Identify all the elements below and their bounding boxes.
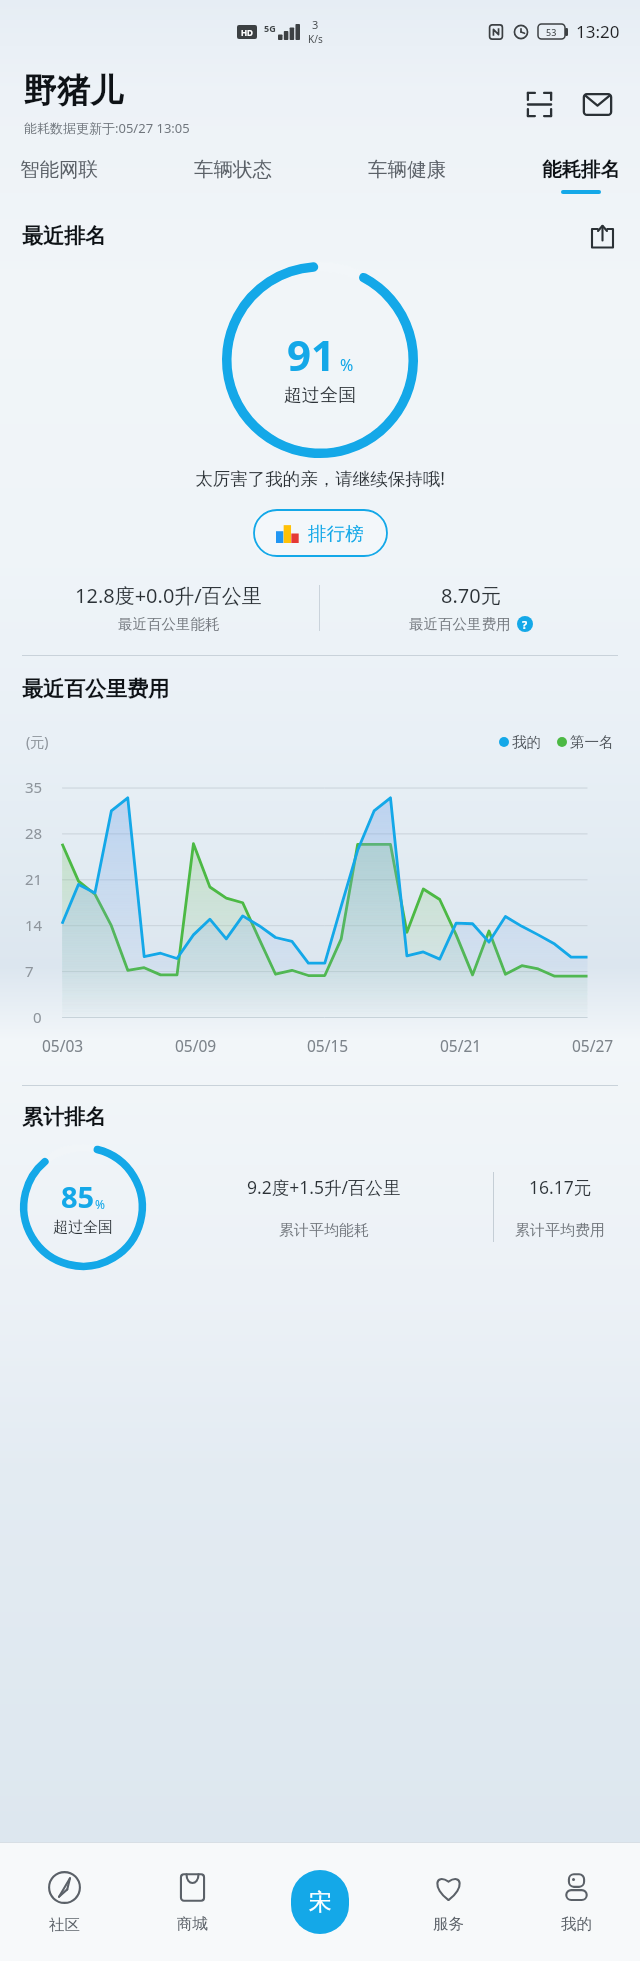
staticText: 服务: [433, 1914, 464, 1934]
staticText: 最近百公里费用: [22, 676, 169, 702]
staticText: 宋: [309, 1888, 332, 1917]
staticText: K/s: [308, 32, 323, 46]
button[interactable]: 服务: [384, 1843, 512, 1961]
staticText: 我的: [512, 733, 541, 751]
staticText: ?: [522, 617, 528, 632]
staticText: 超过全国: [284, 384, 356, 407]
staticText: 累计平均能耗: [279, 1221, 369, 1240]
staticText: 最近百公里能耗: [118, 615, 220, 633]
staticText: 超过全国: [53, 1218, 113, 1237]
button[interactable]: 能耗排名: [536, 155, 626, 196]
staticText: (元): [26, 732, 49, 751]
staticText: 能耗数据更新于:05/27 13:05: [24, 119, 190, 137]
button[interactable]: 车辆状态: [188, 155, 278, 196]
staticText: 7: [25, 961, 34, 981]
button[interactable]: 社区: [0, 1843, 128, 1961]
staticText: 05/15: [307, 1035, 349, 1056]
staticText: 第一名: [570, 733, 614, 751]
button[interactable]: 排行榜: [250, 510, 390, 556]
button[interactable]: 宋: [256, 1843, 384, 1961]
staticText: 野猪儿: [24, 70, 123, 112]
button[interactable]: 智能网联: [14, 155, 104, 196]
staticText: 53: [546, 26, 557, 38]
staticText: 社区: [49, 1915, 80, 1935]
staticText: 05/09: [175, 1035, 217, 1056]
staticText: %: [95, 1196, 105, 1212]
staticText: 05/21: [440, 1035, 482, 1056]
staticText: 能耗排名: [542, 157, 620, 182]
staticText: 35: [25, 777, 43, 797]
button[interactable]: Share: [584, 218, 620, 254]
staticText: 累计平均费用: [515, 1221, 605, 1240]
staticText: 5G: [264, 22, 276, 34]
staticText: 排行榜: [308, 522, 364, 545]
staticText: 91: [287, 326, 336, 383]
staticText: 05/03: [42, 1035, 84, 1056]
staticText: 8.70元: [441, 582, 501, 609]
staticText: 85: [61, 1177, 95, 1216]
staticText: 车辆健康: [368, 157, 446, 182]
staticText: 最近百公里费用: [409, 615, 511, 633]
staticText: 3: [312, 17, 319, 32]
staticText: 21: [25, 869, 43, 889]
staticText: 14: [25, 915, 43, 935]
staticText: 太厉害了我的亲，请继续保持哦!: [0, 466, 640, 490]
staticText: 车辆状态: [194, 157, 272, 182]
button[interactable]: Info: [517, 616, 533, 632]
staticText: 商城: [177, 1914, 208, 1934]
staticText: 13:20: [576, 20, 620, 43]
staticText: 28: [25, 823, 43, 843]
button[interactable]: 商城: [128, 1843, 256, 1961]
staticText: %: [340, 354, 354, 376]
staticText: 我的: [561, 1914, 592, 1934]
staticText: 16.17元: [529, 1175, 592, 1199]
staticText: 05/27: [572, 1035, 614, 1056]
staticText: 0: [33, 1007, 42, 1027]
staticText: 12.8度+0.0升/百公里: [75, 582, 262, 609]
staticText: 最近排名: [22, 223, 584, 249]
staticText: HD: [241, 27, 253, 38]
staticText: 累计排名: [22, 1104, 106, 1130]
button[interactable]: 我的: [512, 1843, 640, 1961]
button[interactable]: 车辆健康: [362, 155, 452, 196]
button[interactable]: Messages: [574, 81, 620, 127]
staticText: 智能网联: [20, 157, 98, 182]
staticText: 9.2度+1.5升/百公里: [247, 1175, 401, 1199]
button[interactable]: Scan: [516, 81, 562, 127]
